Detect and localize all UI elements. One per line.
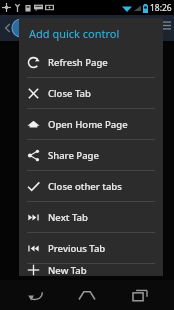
staticText: New Tab xyxy=(48,264,87,276)
button[interactable]: Home xyxy=(69,280,105,310)
staticText: Add quick control xyxy=(29,26,120,41)
staticText: Previous Tab xyxy=(48,242,106,255)
button[interactable]: Refresh Page xyxy=(19,48,163,77)
staticText: Share Page xyxy=(48,149,99,162)
staticText: Refresh Page xyxy=(48,56,108,69)
button[interactable]: Back xyxy=(17,280,53,310)
staticText: Open Home Page xyxy=(48,118,128,131)
button[interactable]: Close other tabs xyxy=(19,171,163,201)
staticText: Close other tabs xyxy=(48,180,122,193)
button[interactable]: Recent apps xyxy=(122,280,158,310)
button[interactable]: Next Tab xyxy=(19,202,163,232)
staticText: 18:26 xyxy=(150,2,172,14)
staticText: Next Tab xyxy=(48,211,88,224)
button[interactable]: Previous Tab xyxy=(19,233,163,263)
button[interactable]: Open Home Page xyxy=(19,109,163,139)
button[interactable]: Share Page xyxy=(19,140,163,170)
button[interactable]: Close Tab xyxy=(19,78,163,108)
button[interactable]: New Tab xyxy=(19,264,163,276)
staticText: Close Tab xyxy=(48,87,91,100)
